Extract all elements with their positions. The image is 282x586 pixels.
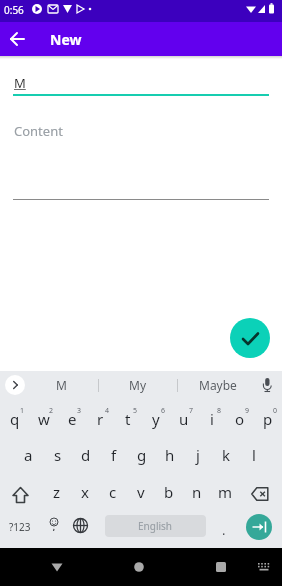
staticText: 7: [189, 406, 194, 416]
staticText: w: [38, 409, 50, 429]
button[interactable]: z: [42, 473, 71, 510]
staticText: j: [196, 445, 200, 465]
staticText: t: [125, 409, 131, 429]
button[interactable]: ?123: [0, 510, 40, 547]
button[interactable]: v: [127, 473, 155, 510]
button[interactable]: Content: [13, 100, 269, 200]
staticText: English: [138, 519, 173, 533]
button[interactable]: [5, 375, 25, 395]
staticText: h: [165, 445, 175, 465]
button[interactable]: [68, 510, 94, 547]
staticText: 0: [273, 406, 278, 416]
button[interactable]: [230, 318, 270, 358]
staticText: 6: [161, 406, 166, 416]
staticText: x: [81, 482, 89, 502]
button[interactable]: English: [105, 515, 206, 537]
button[interactable]: d: [72, 436, 100, 473]
button[interactable]: p: [254, 399, 282, 436]
staticText: 8: [217, 406, 222, 416]
button[interactable]: M: [13, 62, 269, 96]
staticText: 2: [49, 406, 54, 416]
staticText: i: [210, 409, 214, 429]
button[interactable]: b: [155, 473, 183, 510]
staticText: Maybe: [199, 377, 237, 393]
button[interactable]: j: [184, 436, 212, 473]
staticText: b: [164, 482, 174, 502]
staticText: ?123: [9, 520, 31, 534]
button[interactable]: t: [114, 399, 142, 436]
button[interactable]: [0, 473, 42, 510]
button[interactable]: f: [100, 436, 128, 473]
button[interactable]: [246, 514, 272, 540]
staticText: u: [179, 409, 189, 429]
button[interactable]: m: [211, 473, 239, 510]
staticText: Content: [14, 122, 63, 140]
staticText: 3: [77, 406, 82, 416]
staticText: p: [263, 409, 273, 429]
staticText: 9: [245, 406, 250, 416]
staticText: s: [54, 445, 62, 465]
button[interactable]: [207, 553, 235, 581]
staticText: m: [218, 482, 233, 502]
button[interactable]: Maybe: [178, 371, 258, 399]
staticText: New: [50, 30, 82, 49]
button[interactable]: [250, 553, 278, 581]
staticText: 5: [133, 406, 138, 416]
button[interactable]: a: [14, 436, 43, 473]
staticText: 1: [20, 406, 25, 416]
button[interactable]: i: [198, 399, 226, 436]
staticText: q: [10, 409, 20, 429]
staticText: c: [109, 482, 117, 502]
button[interactable]: w: [29, 399, 58, 436]
button[interactable]: e: [58, 399, 86, 436]
button[interactable]: x: [71, 473, 99, 510]
staticText: y: [152, 409, 160, 429]
button[interactable]: [125, 553, 153, 581]
staticText: M: [56, 377, 67, 393]
staticText: k: [222, 445, 231, 465]
button[interactable]: k: [212, 436, 240, 473]
staticText: .: [222, 521, 226, 539]
staticText: d: [81, 445, 91, 465]
button[interactable]: u: [170, 399, 198, 436]
button[interactable]: r: [86, 399, 114, 436]
button[interactable]: l: [240, 436, 268, 473]
staticText: M: [14, 74, 26, 92]
button[interactable]: h: [156, 436, 184, 473]
staticText: l: [252, 445, 256, 465]
button[interactable]: [43, 553, 71, 581]
button[interactable]: s: [43, 436, 72, 473]
staticText: e: [68, 409, 77, 429]
button[interactable]: M: [25, 371, 98, 399]
staticText: n: [192, 482, 202, 502]
staticText: z: [53, 482, 61, 502]
staticText: r: [97, 409, 104, 429]
button[interactable]: q: [0, 399, 29, 436]
button[interactable]: [239, 473, 282, 510]
button[interactable]: My: [98, 371, 178, 399]
button[interactable]: y: [142, 399, 170, 436]
staticText: 0:56: [4, 3, 24, 17]
staticText: a: [24, 445, 33, 465]
button[interactable]: [255, 373, 279, 397]
button[interactable]: [42, 510, 66, 547]
button[interactable]: o: [226, 399, 254, 436]
staticText: o: [235, 409, 245, 429]
button[interactable]: g: [128, 436, 156, 473]
staticText: g: [137, 445, 147, 465]
button[interactable]: n: [183, 473, 211, 510]
button[interactable]: [6, 27, 30, 51]
staticText: 4: [105, 406, 110, 416]
button[interactable]: c: [99, 473, 127, 510]
staticText: My: [129, 377, 147, 393]
button[interactable]: .: [212, 510, 240, 547]
staticText: v: [137, 482, 145, 502]
staticText: f: [111, 445, 117, 465]
